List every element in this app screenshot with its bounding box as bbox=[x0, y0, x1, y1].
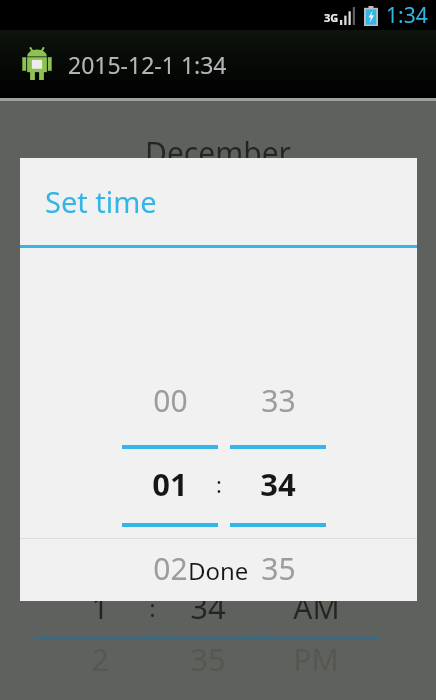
staticText: 3G bbox=[324, 10, 339, 25]
staticText: AM bbox=[293, 587, 340, 628]
staticText: Set time bbox=[45, 182, 157, 221]
staticText: 2015-12-1 1:34 bbox=[68, 49, 227, 80]
staticText: : bbox=[216, 469, 222, 499]
staticText: 34 bbox=[260, 463, 296, 505]
staticText: : bbox=[149, 591, 156, 624]
staticText: 01 bbox=[152, 463, 188, 505]
staticText: 02 bbox=[153, 548, 188, 589]
button[interactable]: Hour bbox=[110, 260, 230, 526]
staticText: 34 bbox=[190, 586, 226, 628]
staticText: PM bbox=[293, 639, 339, 680]
staticText: 00 bbox=[153, 380, 188, 421]
button[interactable]: Done bbox=[20, 539, 417, 601]
staticText: December bbox=[145, 132, 291, 173]
staticText: 35 bbox=[190, 638, 226, 680]
staticText: 35 bbox=[261, 548, 296, 589]
staticText: 33 bbox=[261, 380, 296, 421]
staticText: Done bbox=[188, 554, 249, 587]
staticText: 1:34 bbox=[386, 1, 428, 30]
button[interactable]: Minute bbox=[218, 260, 338, 526]
button[interactable]: 2015-12-1 1:34 bbox=[0, 30, 436, 98]
staticText: 2 bbox=[91, 638, 109, 680]
staticText: 1 bbox=[91, 586, 109, 628]
